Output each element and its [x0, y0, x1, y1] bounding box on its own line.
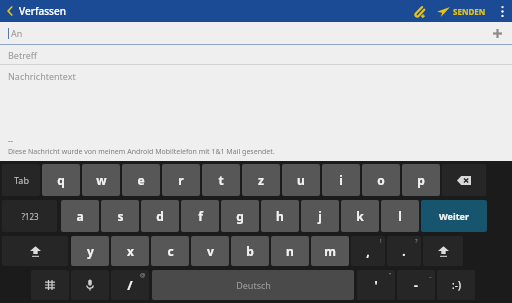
button[interactable]: w	[82, 164, 120, 196]
button[interactable]: j	[301, 200, 339, 232]
staticText: c	[167, 243, 174, 259]
button[interactable]: a	[61, 200, 99, 232]
staticText: r	[178, 172, 184, 188]
button[interactable]: SENDEN	[431, 0, 492, 22]
button[interactable]: v	[191, 236, 229, 266]
button[interactable]: f	[181, 200, 219, 232]
staticText: w	[96, 172, 107, 188]
staticText: b	[246, 243, 254, 259]
button[interactable]: Tab	[2, 164, 40, 196]
staticText: u	[297, 172, 305, 188]
button[interactable]: c	[151, 236, 189, 266]
staticText: k	[356, 208, 364, 224]
button[interactable]: o	[362, 164, 400, 196]
staticText: v	[207, 243, 214, 259]
staticText: l	[398, 208, 402, 224]
button[interactable]: s	[101, 200, 139, 232]
button[interactable]: Add recipient	[486, 22, 508, 44]
button[interactable]: Apostrophe	[357, 270, 395, 300]
staticText: Nachrichtentext	[8, 70, 76, 82]
button[interactable]: l	[381, 200, 419, 232]
staticText: SENDEN	[453, 6, 486, 17]
staticText: ?	[415, 237, 418, 245]
button[interactable]: h	[261, 200, 299, 232]
button[interactable]: q	[42, 164, 80, 196]
button[interactable]: Betreff	[0, 45, 512, 64]
staticText: .	[402, 243, 406, 259]
staticText: s	[117, 208, 124, 224]
button[interactable]: Attach file	[405, 0, 431, 22]
staticText: '	[374, 277, 378, 293]
staticText: z	[258, 172, 264, 188]
button[interactable]: Keyboard settings	[31, 270, 69, 300]
staticText: @	[140, 271, 146, 279]
staticText: p	[417, 172, 425, 188]
button[interactable]: t	[202, 164, 240, 196]
staticText: x	[127, 243, 134, 259]
button[interactable]: y	[71, 236, 109, 266]
button[interactable]: x	[111, 236, 149, 266]
button[interactable]: k	[341, 200, 379, 232]
staticText: Betreff	[8, 49, 37, 61]
staticText: d	[156, 208, 164, 224]
button[interactable]: Weiter	[421, 200, 487, 232]
button[interactable]: u	[282, 164, 320, 196]
staticText: o	[377, 172, 385, 188]
button[interactable]: An	[0, 22, 512, 44]
staticText: n	[286, 243, 294, 259]
staticText: _	[429, 271, 432, 279]
button[interactable]: Space	[152, 270, 354, 300]
staticText: y	[87, 243, 94, 259]
staticText: i	[339, 172, 343, 188]
button[interactable]: n	[271, 236, 309, 266]
staticText: j	[318, 208, 322, 224]
button[interactable]: Shift	[2, 236, 68, 266]
staticText: "	[389, 271, 392, 279]
staticText: !	[380, 237, 382, 245]
button[interactable]: Slash	[111, 270, 149, 300]
staticText: Deutsch	[236, 279, 271, 291]
button[interactable]: m	[311, 236, 349, 266]
staticText: a	[76, 208, 84, 224]
staticText: /	[127, 276, 133, 294]
staticText: ?123	[21, 211, 39, 222]
staticText: -	[414, 277, 418, 293]
staticText: q	[57, 172, 65, 188]
staticText: g	[236, 208, 244, 224]
button[interactable]: b	[231, 236, 269, 266]
staticText: Verfassen	[19, 4, 66, 18]
button[interactable]: p	[402, 164, 440, 196]
staticText: t	[218, 172, 224, 188]
staticText: Tab	[14, 174, 29, 186]
button[interactable]: Shift	[423, 236, 463, 266]
button[interactable]: Emoticon	[437, 270, 475, 300]
button[interactable]: Period	[387, 236, 421, 266]
button[interactable]: Comma	[351, 236, 385, 266]
staticText: m	[324, 243, 336, 259]
staticText: f	[198, 208, 203, 224]
staticText: ,	[366, 243, 370, 259]
staticText: Diese Nachricht wurde von meinem Android…	[8, 147, 275, 157]
button[interactable]: z	[242, 164, 280, 196]
staticText: h	[276, 208, 284, 224]
button[interactable]: g	[221, 200, 259, 232]
staticText: An	[11, 27, 23, 39]
button[interactable]: Nachrichtentext	[0, 65, 512, 161]
staticText: --	[8, 135, 14, 146]
staticText: Weiter	[439, 210, 469, 222]
staticText: e	[137, 172, 145, 188]
button[interactable]: More options	[492, 0, 512, 22]
button[interactable]: Symbols	[2, 200, 57, 232]
button[interactable]: i	[322, 164, 360, 196]
button[interactable]: d	[141, 200, 179, 232]
staticText: :-)	[452, 278, 461, 292]
button[interactable]: Hyphen	[397, 270, 435, 300]
button[interactable]: Back, Verfassen	[0, 0, 74, 22]
button[interactable]: r	[162, 164, 200, 196]
button[interactable]: Backspace	[442, 164, 486, 196]
button[interactable]: e	[122, 164, 160, 196]
button[interactable]: Voice input	[71, 270, 109, 300]
